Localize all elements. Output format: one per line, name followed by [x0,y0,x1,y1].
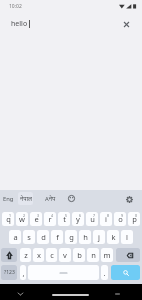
staticText: . [103,268,106,278]
staticText: k [111,232,116,242]
button[interactable]: v [59,248,71,262]
staticText: नेपाल [20,195,32,203]
staticText: 9 [121,213,124,218]
button[interactable]: . [101,265,108,280]
staticText: t [63,214,66,224]
staticText: z [24,250,28,260]
staticText: 7 [93,213,96,218]
button[interactable]: Eng [3,195,14,203]
staticText: 6 [79,213,82,218]
button[interactable]: y [72,212,84,226]
button[interactable]: t [58,212,70,226]
staticText: m [103,250,111,260]
button[interactable]: Settings [124,194,134,204]
staticText: g [69,232,74,242]
button[interactable]: l [121,230,133,244]
staticText: j [98,232,100,242]
button[interactable]: Backspace [116,248,140,262]
button[interactable]: d [37,230,49,244]
staticText: q [6,214,11,224]
staticText: 10:02 [9,3,22,10]
staticText: p [132,214,137,224]
staticText: y [76,214,80,224]
button[interactable]: Hide keyboard [16,289,25,298]
staticText: , [22,268,25,278]
staticText: Eng [3,195,14,203]
button[interactable]: नेपाल [20,195,32,203]
staticText: 1 [9,213,12,218]
staticText: 3 [37,213,40,218]
staticText: o [118,214,123,224]
staticText: x [37,250,41,260]
staticText: 0 [135,213,138,218]
staticText: w [19,214,25,224]
button[interactable]: w [16,212,28,226]
button[interactable]: a [9,230,21,244]
staticText: 4 [51,213,54,218]
staticText: u [90,214,95,224]
button[interactable]: Clear [120,18,132,30]
button[interactable]: f [51,230,63,244]
button[interactable]: k [107,230,119,244]
staticText: e [34,214,39,224]
button[interactable]: Aनेप [45,195,56,203]
button[interactable]: g [65,230,77,244]
button[interactable]: b [73,248,85,262]
staticText: s [27,232,31,242]
button[interactable] [28,265,99,280]
staticText: b [77,250,82,260]
staticText: 8 [107,213,110,218]
button[interactable]: h [79,230,91,244]
staticText: v [63,250,67,260]
button[interactable]: m [101,248,113,262]
button[interactable]: p [128,212,140,226]
button[interactable]: j [93,230,105,244]
staticText: 5 [65,213,68,218]
staticText: d [41,232,46,242]
staticText: a [13,232,18,242]
button[interactable]: r [44,212,56,226]
staticText: 2 [23,213,26,218]
staticText: i [105,214,107,224]
button[interactable]: Emoji [67,194,76,203]
staticText: n [91,250,96,260]
button[interactable]: z [20,248,31,262]
staticText: Aनेप [45,195,56,203]
button[interactable]: x [33,248,44,262]
staticText: c [50,250,54,260]
button[interactable]: i [100,212,112,226]
button[interactable]: , [20,265,26,280]
staticText: l [126,232,128,242]
staticText: f [56,232,59,242]
button[interactable]: Switch keyboard [113,289,122,298]
button[interactable]: u [86,212,98,226]
staticText: h [83,232,88,242]
button[interactable]: Search [111,265,140,280]
button[interactable]: o [114,212,126,226]
button[interactable]: n [87,248,99,262]
button[interactable]: e [30,212,42,226]
button[interactable]: q [2,212,14,226]
button[interactable]: ?123 [1,265,17,280]
staticText: hello [11,19,28,29]
staticText: ?123 [4,269,15,276]
button[interactable]: c [46,248,57,262]
button[interactable]: Shift [1,248,17,262]
button[interactable]: s [23,230,35,244]
staticText: r [48,214,52,224]
